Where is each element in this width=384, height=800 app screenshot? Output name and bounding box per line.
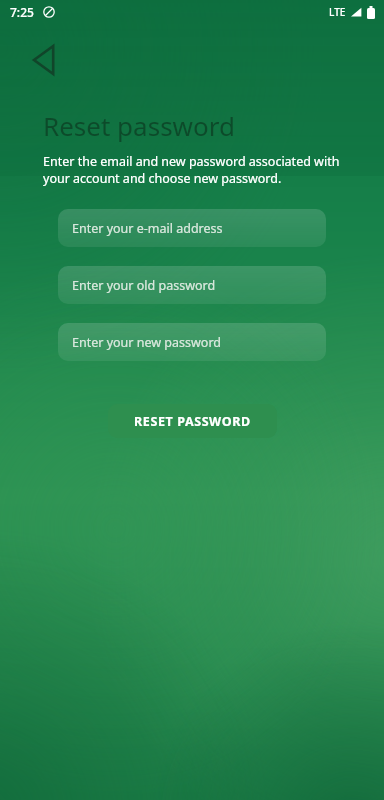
button[interactable]: Back bbox=[22, 38, 66, 82]
staticText: RESET PASSWORD bbox=[134, 413, 251, 430]
staticText: Enter your old password bbox=[72, 277, 216, 294]
button[interactable]: Enter your new password bbox=[58, 323, 326, 361]
staticText: 7:25 bbox=[10, 4, 34, 20]
button[interactable]: Enter your e-mail address bbox=[58, 209, 326, 247]
staticText: Enter your new password bbox=[72, 334, 221, 351]
staticText: Enter the email and new password associa… bbox=[43, 153, 341, 187]
staticText: Enter your e-mail address bbox=[72, 220, 223, 237]
button[interactable]: RESET PASSWORD bbox=[108, 404, 277, 438]
staticText: LTE bbox=[329, 5, 346, 19]
button[interactable]: Enter your old password bbox=[58, 266, 326, 304]
staticText: Reset password bbox=[43, 108, 235, 143]
